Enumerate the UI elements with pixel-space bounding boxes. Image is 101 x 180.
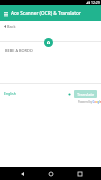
button[interactable]: Back [4,24,16,29]
button[interactable]: Back [16,167,29,180]
button[interactable]: Recent apps [73,167,86,180]
button[interactable]: Menu [0,8,11,19]
button[interactable]: Home [44,167,57,180]
staticText: Ace Scanner (OCR) & Translator [11,10,81,16]
button[interactable]: Translate [74,90,97,98]
button[interactable]: English [4,91,16,96]
staticText: 12:29 [91,0,100,5]
staticText: BEBE A BORDO [5,48,33,53]
button[interactable]: Capture photo [44,38,53,47]
other: Swap languages [68,93,71,96]
staticText: Powered by Google [78,100,101,103]
staticText: Translate [77,92,95,97]
staticText: Back [7,24,16,29]
